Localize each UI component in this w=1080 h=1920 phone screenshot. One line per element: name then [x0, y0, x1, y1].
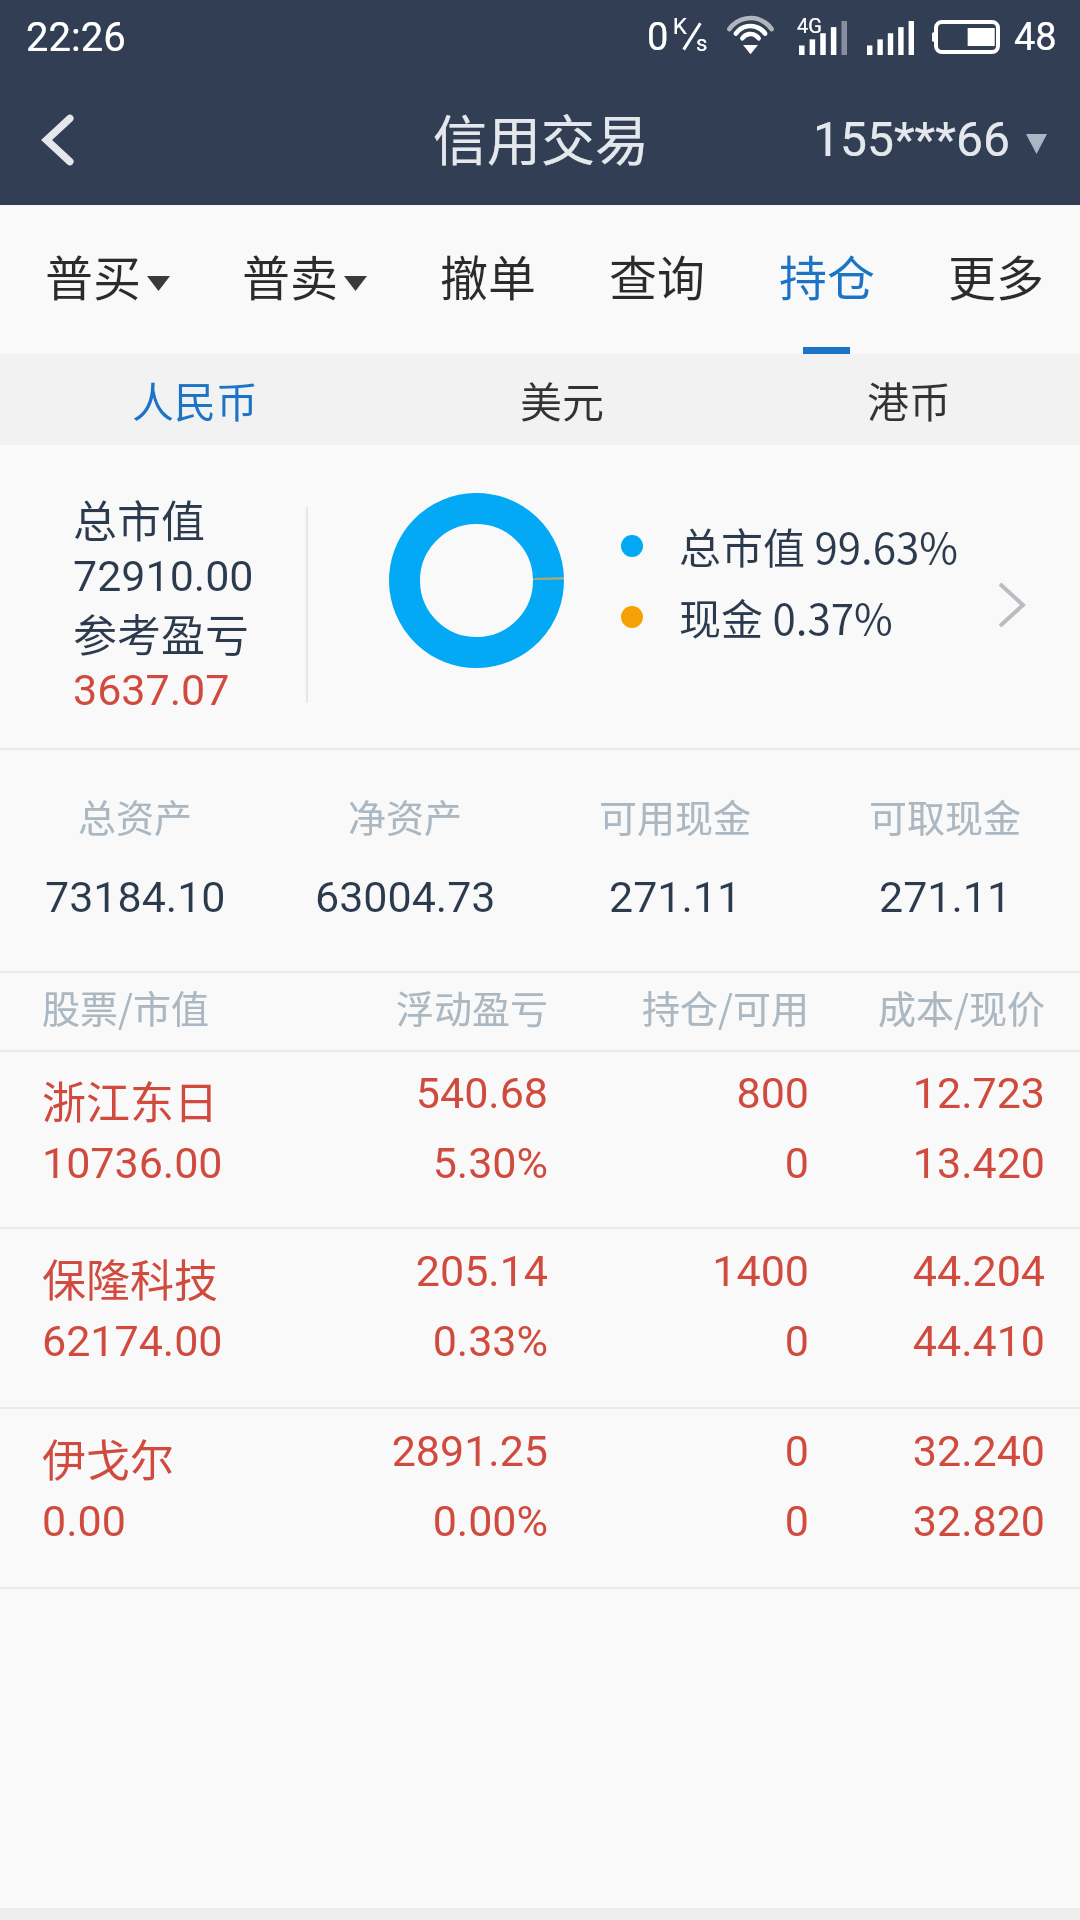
staticText: 155***66: [813, 111, 1010, 167]
staticText: 浮动盈亏: [242, 979, 548, 1034]
staticText: 62174.00: [42, 1316, 242, 1366]
other: Details: [998, 582, 1025, 628]
staticText: 现金 0.37%: [679, 586, 893, 647]
button[interactable]: 撤单: [440, 200, 537, 349]
staticText: 13.420: [809, 1138, 1045, 1188]
staticText: 信用交易: [433, 98, 649, 176]
staticText: 浙江东日: [42, 1068, 242, 1132]
staticText: 参考盈亏: [73, 601, 249, 665]
staticText: 可用现金: [599, 788, 752, 843]
staticText: 5.30%: [242, 1138, 548, 1188]
button[interactable]: 总市值: [0, 445, 1080, 748]
staticText: 540.68: [242, 1068, 548, 1118]
staticText: 32.820: [809, 1496, 1045, 1546]
staticText: 72910.00: [73, 551, 254, 601]
staticText: 0.00: [42, 1496, 242, 1546]
staticText: 0.33%: [242, 1316, 548, 1366]
staticText: 4G: [797, 14, 822, 37]
staticText: 12.723: [809, 1068, 1045, 1118]
staticText: 271.11: [609, 872, 742, 922]
button[interactable]: 更多: [948, 200, 1045, 349]
staticText: 人民币: [132, 369, 259, 430]
staticText: 48: [1014, 15, 1057, 60]
button[interactable]: 美元: [392, 354, 732, 445]
staticText: 73184.10: [45, 872, 226, 922]
staticText: 2891.25: [242, 1426, 548, 1476]
button[interactable]: 浙江东日: [0, 1052, 1080, 1227]
staticText: 持仓: [779, 240, 876, 310]
staticText: 净资产: [348, 788, 463, 843]
staticText: 总市值: [73, 487, 205, 551]
staticText: 保隆科技: [42, 1246, 242, 1310]
button[interactable]: 查询: [609, 200, 706, 349]
button[interactable]: 155***66: [797, 75, 1080, 205]
staticText: 0: [647, 15, 669, 60]
staticText: 800: [548, 1068, 809, 1118]
staticText: 普买: [45, 240, 142, 310]
staticText: 伊戈尔: [42, 1426, 242, 1490]
button[interactable]: 普卖: [242, 200, 367, 349]
button[interactable]: 伊戈尔: [0, 1409, 1080, 1587]
staticText: 0.00%: [242, 1496, 548, 1546]
staticText: K: [673, 14, 687, 40]
staticText: 美元: [520, 369, 605, 430]
staticText: 0: [548, 1138, 809, 1188]
staticText: 44.204: [809, 1246, 1045, 1296]
staticText: 44.410: [809, 1316, 1045, 1366]
staticText: 0: [548, 1316, 809, 1366]
staticText: 总市值 99.63%: [679, 515, 959, 576]
button[interactable]: 保隆科技: [0, 1229, 1080, 1407]
button[interactable]: 持仓: [779, 200, 876, 349]
staticText: 查询: [609, 240, 706, 310]
staticText: 总资产: [78, 788, 193, 843]
staticText: 撤单: [440, 240, 537, 310]
staticText: 0: [548, 1426, 809, 1476]
staticText: 普卖: [242, 240, 339, 310]
button[interactable]: 港币: [739, 354, 1079, 445]
staticText: s: [696, 31, 708, 57]
staticText: 10736.00: [42, 1138, 242, 1188]
staticText: 3637.07: [73, 665, 230, 715]
staticText: 1400: [548, 1246, 809, 1296]
staticText: 持仓/可用: [548, 979, 809, 1034]
staticText: 成本/现价: [809, 979, 1045, 1034]
button[interactable]: Back: [0, 75, 118, 205]
staticText: 32.240: [809, 1426, 1045, 1476]
staticText: 271.11: [879, 872, 1012, 922]
button[interactable]: 普买: [45, 200, 170, 349]
staticText: 205.14: [242, 1246, 548, 1296]
staticText: 63004.73: [315, 872, 496, 922]
staticText: 可取现金: [869, 788, 1022, 843]
button[interactable]: 人民币: [25, 354, 365, 445]
staticText: 港币: [867, 369, 952, 430]
staticText: 22:26: [26, 14, 126, 61]
staticText: 更多: [948, 240, 1045, 310]
staticText: 股票/市值: [42, 979, 242, 1034]
staticText: 0: [548, 1496, 809, 1546]
